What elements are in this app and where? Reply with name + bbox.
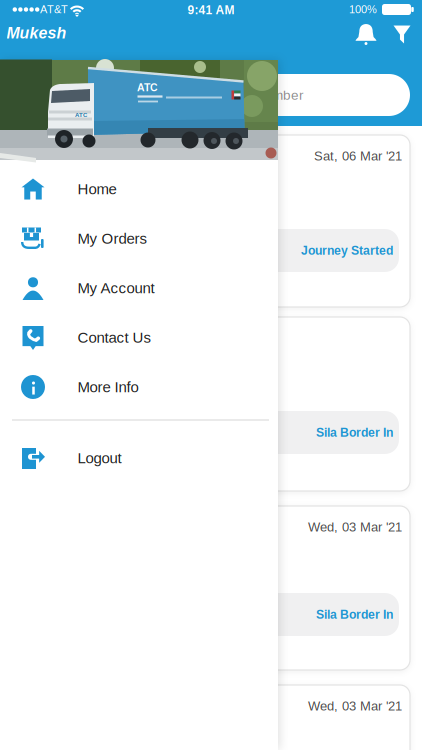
staticText: Logout <box>77 450 121 466</box>
button[interactable]: More Info <box>0 362 278 411</box>
staticText: Wed, 03 Mar '21 <box>308 520 402 534</box>
button[interactable]: My Orders <box>0 214 278 263</box>
button[interactable]: Sila Border In <box>12 317 410 491</box>
staticText: Sila Border In <box>316 426 393 439</box>
button[interactable]: Sat, 06 Mar '21 <box>12 135 410 307</box>
button[interactable]: Wed, 03 Mar '21 <box>12 685 410 750</box>
button[interactable]: Filter <box>387 17 417 51</box>
staticText: 9:41 AM <box>187 3 234 17</box>
staticText: Wed, 03 Mar '21 <box>308 699 402 713</box>
staticText: Journey Started <box>301 244 393 257</box>
staticText: Sila Border In <box>316 608 393 621</box>
staticText: More Info <box>77 379 138 395</box>
button[interactable]: Wed, 03 Mar '21 <box>12 506 410 670</box>
staticText: Contact Us <box>77 329 151 346</box>
button[interactable]: Contact Us <box>0 313 278 362</box>
staticText: Mukesh <box>6 24 66 42</box>
staticText: Sat, 06 Mar '21 <box>314 149 402 163</box>
staticText: Home <box>77 181 116 197</box>
button[interactable]: Logout <box>0 433 278 482</box>
button[interactable]: Search by order number <box>14 74 410 116</box>
staticText: AT&T <box>40 3 68 16</box>
staticText: My Orders <box>77 230 147 247</box>
button[interactable]: Home <box>0 164 278 213</box>
staticText: ATC <box>137 82 158 93</box>
button[interactable]: Notifications <box>349 17 383 51</box>
staticText: Search by order number <box>153 87 303 103</box>
staticText: ATC <box>75 112 87 118</box>
staticText: My Account <box>77 280 154 296</box>
button[interactable]: My Account <box>0 263 278 312</box>
staticText: 100% <box>349 3 377 16</box>
